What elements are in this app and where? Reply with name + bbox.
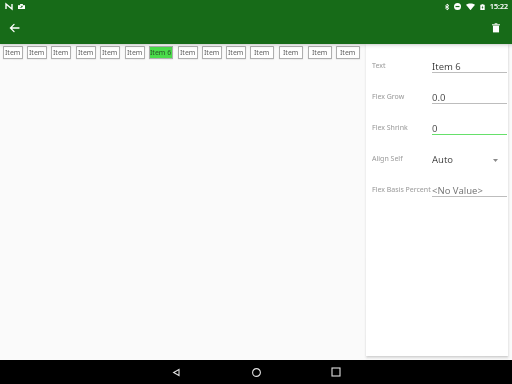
button[interactable]: Align Self	[366, 141, 508, 172]
staticText: Align Self	[372, 154, 403, 164]
button[interactable]: Item	[336, 46, 360, 59]
button[interactable]: Item	[178, 46, 198, 59]
staticText: Item	[283, 48, 299, 58]
staticText: Flex Shrink	[372, 123, 408, 133]
staticText: 0	[432, 122, 438, 135]
button[interactable]: Flex Shrink	[366, 110, 508, 141]
staticText: Flex Basis Percent	[372, 185, 431, 195]
button[interactable]: Item	[308, 46, 332, 59]
staticText: Item	[29, 48, 45, 58]
button[interactable]: Flex Grow	[366, 79, 508, 110]
staticText: 15:22	[490, 2, 508, 12]
staticText: Flex Grow	[372, 92, 405, 102]
button[interactable]: Navigate up	[0, 14, 28, 42]
staticText: Item	[228, 48, 244, 58]
button[interactable]: Item	[125, 46, 145, 59]
staticText: Item	[204, 48, 220, 58]
staticText: Item	[53, 48, 69, 58]
staticText: Item	[127, 48, 143, 58]
staticText: Item 6	[150, 48, 172, 58]
button[interactable]: Delete	[482, 14, 510, 42]
staticText: Item	[102, 48, 118, 58]
button[interactable]: Item	[226, 46, 246, 59]
staticText: Text	[372, 61, 386, 71]
button[interactable]: Item	[250, 46, 274, 59]
staticText: Item	[254, 48, 270, 58]
staticText: Item	[340, 48, 356, 58]
staticText: Item	[312, 48, 328, 58]
staticText: Item 6	[432, 60, 461, 73]
button[interactable]: Back	[136, 360, 216, 384]
button[interactable]: Item	[279, 46, 303, 59]
button[interactable]: Recent apps	[296, 360, 376, 384]
button[interactable]: Flex Basis Percent	[366, 172, 508, 203]
staticText: Item	[180, 48, 196, 58]
button[interactable]: Item	[76, 46, 96, 59]
button[interactable]: Item 6	[149, 46, 173, 59]
staticText: 0.0	[432, 91, 446, 104]
staticText: Item	[5, 48, 21, 58]
button[interactable]: Text	[366, 48, 508, 79]
staticText: <No Value>	[432, 184, 483, 197]
staticText: Item	[78, 48, 94, 58]
button[interactable]: Item	[202, 46, 222, 59]
button[interactable]: Item	[51, 46, 71, 59]
staticText: Auto	[432, 153, 454, 166]
button[interactable]: Item	[27, 46, 47, 59]
button[interactable]: Item	[3, 46, 23, 59]
button[interactable]: Home	[216, 360, 296, 384]
button[interactable]: Item	[100, 46, 120, 59]
